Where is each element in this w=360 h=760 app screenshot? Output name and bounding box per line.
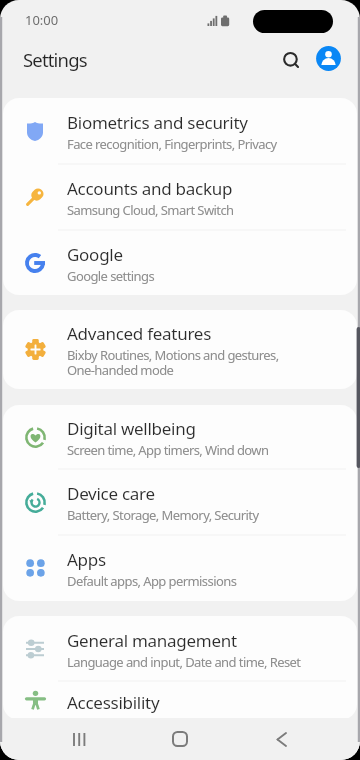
staticText: Accessibility [67, 693, 160, 713]
staticText: Settings [23, 47, 87, 72]
button[interactable]: Search [271, 40, 312, 81]
staticText: 10:00 [25, 11, 59, 29]
staticText: Digital wellbeing [67, 419, 196, 439]
staticText: Bixby Routines, Motions and gestures, On… [67, 349, 279, 379]
button[interactable]: Home [146, 718, 213, 760]
button[interactable]: Apps [3, 535, 357, 601]
staticText: Language and input, Date and time, Reset [67, 656, 301, 671]
staticText: Face recognition, Fingerprints, Privacy [67, 138, 277, 153]
staticText: Advanced features [67, 324, 212, 344]
staticText: Accounts and backup [67, 179, 233, 199]
staticText: Default apps, App permissions [67, 575, 237, 590]
staticText: Screen time, App timers, Wind down [67, 444, 269, 459]
button[interactable]: Advanced features [3, 310, 357, 389]
button[interactable]: Accessibility [3, 681, 357, 720]
button[interactable]: General management [3, 616, 357, 681]
staticText: Google [67, 245, 123, 265]
staticText: Device care [67, 484, 155, 504]
staticText: Google settings [67, 270, 155, 285]
staticText: General management [67, 631, 237, 651]
button[interactable]: Recents [46, 718, 113, 760]
button[interactable]: Account [308, 38, 349, 79]
staticText: Biometrics and security [67, 113, 248, 133]
button[interactable]: Biometrics and security [3, 98, 357, 164]
button[interactable]: Back [248, 718, 315, 760]
staticText: Apps [67, 550, 106, 570]
button[interactable]: Digital wellbeing [3, 405, 357, 469]
staticText: Battery, Storage, Memory, Security [67, 509, 259, 524]
button[interactable]: Accounts and backup [3, 164, 357, 230]
button[interactable]: Device care [3, 469, 357, 535]
staticText: Samsung Cloud, Smart Switch [67, 204, 234, 219]
button[interactable]: Google [3, 230, 357, 295]
